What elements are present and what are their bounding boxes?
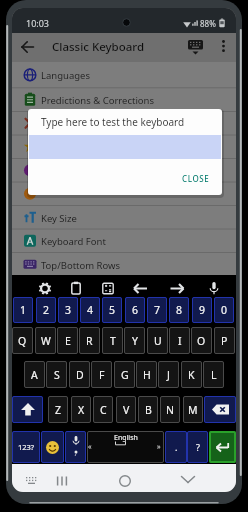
button[interactable]: [204, 396, 236, 423]
staticText: 5: [109, 303, 116, 317]
button[interactable]: [113, 470, 137, 490]
button[interactable]: [12, 396, 43, 423]
button[interactable]: D: [69, 361, 90, 388]
button[interactable]: Q: [12, 327, 33, 354]
staticText: 7: [154, 303, 161, 317]
staticText: ?: [196, 441, 200, 453]
staticText: Predictions & Corrections: [41, 94, 155, 107]
button[interactable]: 0: [214, 297, 234, 323]
staticText: H: [143, 368, 151, 382]
staticText: Type here to test the keyboard: [41, 115, 185, 129]
button[interactable]: U: [147, 327, 168, 354]
staticText: .: [175, 441, 178, 453]
button[interactable]: H: [136, 361, 157, 388]
button[interactable]: [12, 159, 236, 183]
button[interactable]: K: [181, 361, 202, 388]
button[interactable]: [62, 470, 86, 490]
button[interactable]: 5: [102, 297, 122, 323]
staticText: 88%: [200, 18, 216, 29]
button[interactable]: 8: [169, 297, 189, 323]
button[interactable]: [41, 431, 64, 463]
button[interactable]: 2: [36, 297, 56, 323]
staticText: 10:03: [26, 17, 50, 29]
staticText: E: [65, 334, 71, 348]
button[interactable]: Predictions & Corrections: [12, 88, 236, 112]
button[interactable]: M: [183, 396, 203, 423]
staticText: X: [78, 403, 85, 417]
staticText: J: [167, 368, 170, 382]
button[interactable]: T: [102, 327, 123, 354]
staticText: C: [100, 403, 107, 417]
staticText: I: [178, 334, 182, 348]
staticText: L: [211, 368, 217, 382]
staticText: 1: [20, 303, 27, 317]
staticText: F: [99, 368, 105, 382]
button[interactable]: L: [203, 361, 224, 388]
staticText: T: [110, 334, 116, 348]
staticText: D: [76, 368, 84, 382]
button[interactable]: C: [93, 396, 113, 423]
button[interactable]: 9: [192, 297, 212, 323]
button[interactable]: [12, 112, 236, 136]
button[interactable]: J: [158, 361, 179, 388]
button[interactable]: [87, 431, 164, 463]
staticText: W: [41, 334, 51, 348]
button[interactable]: Keyboard Font: [12, 229, 236, 253]
staticText: O: [197, 334, 206, 348]
button[interactable]: O: [191, 327, 212, 354]
button[interactable]: Key Size: [12, 206, 236, 230]
button[interactable]: W: [35, 327, 56, 354]
staticText: «: [88, 442, 92, 452]
button[interactable]: 123?: [12, 431, 40, 463]
button[interactable]: 3: [58, 297, 78, 323]
staticText: Top/Bottom Rows: [41, 259, 121, 272]
button[interactable]: Top/Bottom Rows: [12, 253, 236, 277]
staticText: B: [145, 403, 152, 417]
staticText: N: [166, 403, 174, 417]
button[interactable]: .: [165, 431, 187, 463]
staticText: 3: [65, 303, 72, 317]
button[interactable]: V: [116, 396, 136, 423]
staticText: U: [154, 334, 162, 348]
button[interactable]: P: [214, 327, 235, 354]
staticText: 9: [199, 303, 206, 317]
button[interactable]: G: [114, 361, 135, 388]
button[interactable]: [65, 431, 86, 463]
staticText: Q: [18, 334, 27, 348]
button[interactable]: F: [91, 361, 112, 388]
button[interactable]: B: [138, 396, 158, 423]
staticText: M: [188, 403, 198, 417]
button[interactable]: E: [57, 327, 78, 354]
staticText: Y: [132, 334, 138, 348]
staticText: G: [121, 368, 129, 382]
staticText: A: [31, 368, 38, 382]
button[interactable]: [12, 182, 236, 206]
button[interactable]: CLOSE: [180, 171, 212, 186]
button[interactable]: S: [46, 361, 67, 388]
button[interactable]: N: [160, 396, 180, 423]
staticText: 0: [221, 303, 228, 317]
staticText: R: [86, 334, 93, 348]
staticText: K: [188, 368, 195, 382]
staticText: Key Size: [41, 212, 77, 225]
staticText: 6: [132, 303, 139, 317]
staticText: CLOSE: [182, 173, 210, 184]
button[interactable]: ?: [187, 431, 208, 463]
staticText: V: [123, 403, 130, 417]
button[interactable]: 1: [13, 297, 33, 323]
button[interactable]: Z: [48, 396, 68, 423]
button[interactable]: A: [24, 361, 45, 388]
button[interactable]: [12, 135, 236, 159]
button[interactable]: Languages: [12, 62, 236, 88]
button[interactable]: R: [79, 327, 100, 354]
button[interactable]: [209, 431, 236, 463]
button[interactable]: Y: [124, 327, 145, 354]
button[interactable]: 7: [147, 297, 167, 323]
button[interactable]: [176, 470, 200, 490]
button[interactable]: 4: [80, 297, 100, 323]
button[interactable]: 6: [125, 297, 145, 323]
staticText: 8: [176, 303, 183, 317]
button[interactable]: X: [71, 396, 91, 423]
button[interactable]: I: [169, 327, 190, 354]
